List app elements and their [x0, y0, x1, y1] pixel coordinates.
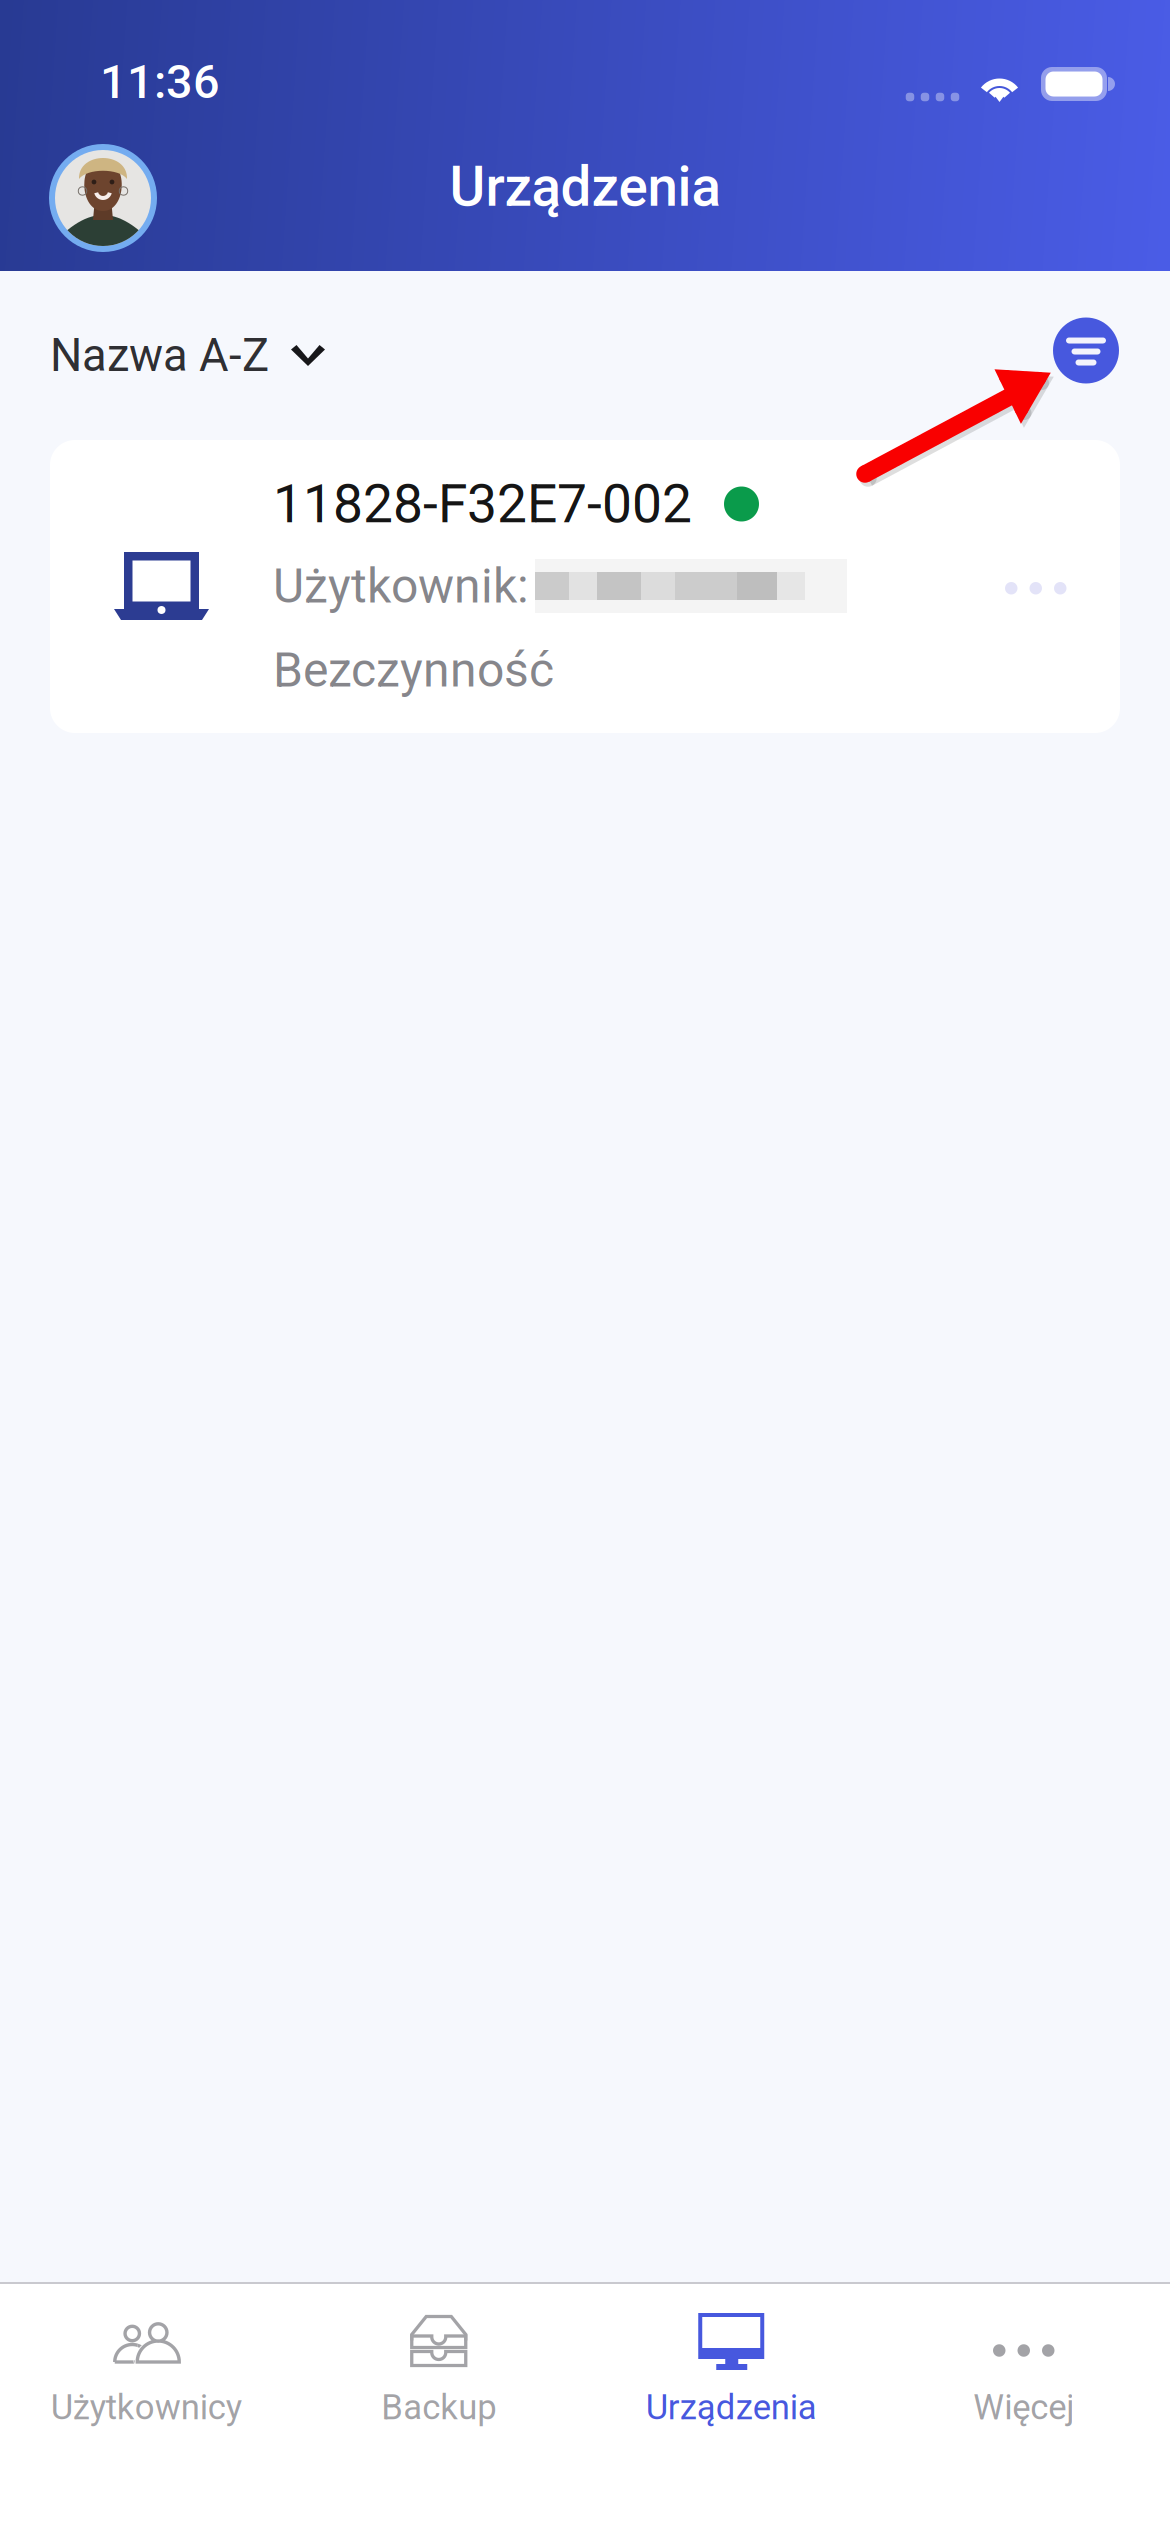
- staticText: Bezczynność: [273, 642, 554, 698]
- button[interactable]: Nazwa A-Z: [50, 329, 325, 382]
- staticText: Więcej: [973, 2387, 1074, 2428]
- staticText: 11828-F32E7-002: [273, 473, 692, 535]
- button[interactable]: Profil: [49, 144, 157, 252]
- button[interactable]: Filtruj: [1053, 317, 1119, 383]
- button[interactable]: 11828-F32E7-002: [50, 440, 1120, 733]
- staticText: 11:36: [100, 55, 220, 109]
- staticText: Użytkownik:: [273, 558, 529, 614]
- button[interactable]: Backup: [292, 2284, 585, 2474]
- button[interactable]: Więcej: [877, 2284, 1170, 2474]
- staticText: Urządzenia: [449, 155, 720, 219]
- staticText: Nazwa A-Z: [50, 329, 269, 382]
- staticText: Urządzenia: [646, 2387, 817, 2428]
- staticText: Backup: [381, 2387, 496, 2428]
- button[interactable]: Urządzenia: [585, 2284, 877, 2474]
- button[interactable]: Użytkownicy: [0, 2284, 292, 2474]
- staticText: Użytkownicy: [51, 2387, 242, 2428]
